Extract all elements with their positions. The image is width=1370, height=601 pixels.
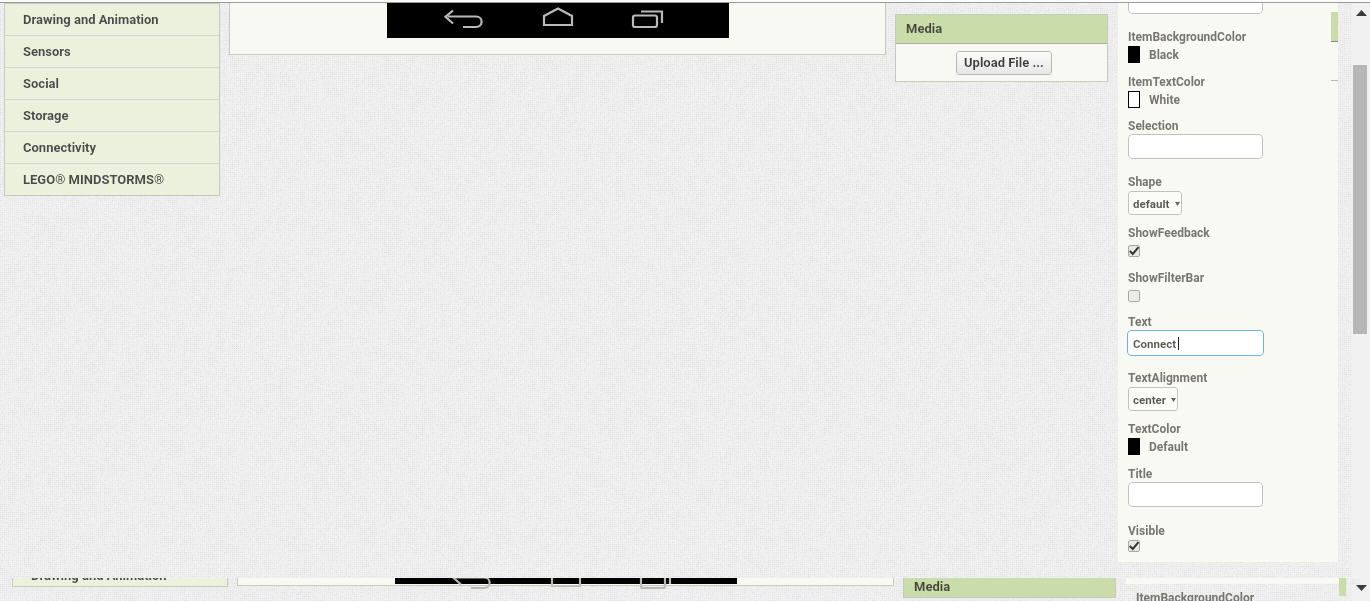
staticText: ItemBackgroundColor: [1128, 30, 1247, 44]
staticText: default: [1133, 197, 1170, 210]
staticText: ShowFilterBar: [1128, 271, 1205, 285]
staticText: TextAlignment: [1128, 371, 1208, 385]
button[interactable]: Unchecked: [1128, 290, 1140, 302]
staticText: Connectivity: [23, 140, 97, 155]
button[interactable]: LEGO® MINDSTORMS®: [5, 164, 219, 195]
button[interactable]: Sensors: [5, 36, 219, 67]
button[interactable]: [1128, 134, 1263, 159]
staticText: TextColor: [1128, 422, 1181, 436]
staticText: Drawing and Animation: [23, 12, 159, 27]
staticText: LEGO® MINDSTORMS®: [23, 172, 165, 187]
staticText: Storage: [23, 108, 69, 123]
button[interactable]: Upload File ...: [956, 51, 1052, 75]
staticText: center: [1133, 393, 1166, 406]
button[interactable]: White: [1128, 91, 1180, 108]
staticText: Upload File ...: [964, 55, 1044, 70]
button[interactable]: Storage: [5, 100, 219, 131]
button[interactable]: Checked: [1128, 245, 1140, 257]
staticText: ShowFeedback: [1128, 226, 1210, 240]
button[interactable]: Black: [1128, 46, 1179, 63]
staticText: Drawing and Animation: [31, 578, 167, 583]
staticText: White: [1149, 93, 1180, 107]
staticText: None...: [1133, 0, 1172, 6]
button[interactable]: Drawing and Animation: [13, 578, 227, 586]
staticText: Title: [1128, 467, 1153, 481]
staticText: Connect: [1133, 337, 1177, 350]
staticText: Shape: [1128, 175, 1162, 189]
staticText: Default: [1149, 440, 1188, 454]
button[interactable]: Connectivity: [5, 132, 219, 163]
staticText: Visible: [1128, 524, 1165, 538]
button[interactable]: default: [1128, 191, 1182, 215]
staticText: Selection: [1128, 119, 1179, 133]
staticText: Black: [1149, 48, 1179, 62]
button[interactable]: Connect: [1127, 330, 1264, 356]
staticText: ItemBackgroundColor: [1136, 591, 1255, 601]
button[interactable]: center: [1128, 387, 1178, 411]
button[interactable]: Scroll down: [1352, 579, 1370, 597]
staticText: Sensors: [23, 44, 71, 59]
button[interactable]: Scroll up: [1352, 4, 1370, 22]
button[interactable]: Drawing and Animation: [5, 4, 219, 35]
button[interactable]: Checked: [1128, 540, 1140, 552]
staticText: Social: [23, 76, 59, 91]
staticText: Media: [906, 21, 943, 36]
button[interactable]: Social: [5, 68, 219, 99]
button[interactable]: [1128, 482, 1263, 507]
button[interactable]: Default: [1128, 438, 1188, 455]
staticText: Text: [1128, 315, 1152, 329]
staticText: ItemTextColor: [1128, 75, 1205, 89]
staticText: Media: [914, 579, 951, 594]
